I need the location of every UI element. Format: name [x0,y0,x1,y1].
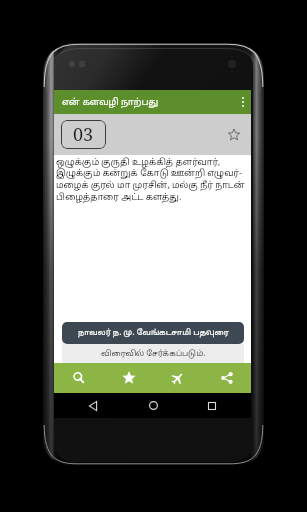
button[interactable]: Search [54,363,104,393]
button[interactable]: 03 [61,120,106,149]
button[interactable]: நாவலர் ந. மு. வேங்கடசாமி பதவுரை [62,322,244,344]
staticText: விரைவில் சேர்க்கப்படும். [101,349,206,359]
button[interactable]: Add to favourites [224,125,244,145]
button[interactable]: Send [153,363,202,393]
staticText: நாவலர் ந. மு. வேங்கடசாமி பதவுரை [78,328,229,338]
button[interactable]: Share [202,363,251,393]
button[interactable]: Home [133,393,173,418]
button[interactable]: Recents [192,393,232,418]
staticText: 03 [73,122,94,147]
staticText: ஒழுக்கும் குருதி உழக்கித் தளர்வார், இழுக… [56,157,247,204]
staticText: என் களவழி நாற்பது [62,97,159,108]
button[interactable]: Back [73,393,113,418]
button[interactable]: More options [235,90,251,114]
button[interactable]: Favourites [104,363,153,393]
